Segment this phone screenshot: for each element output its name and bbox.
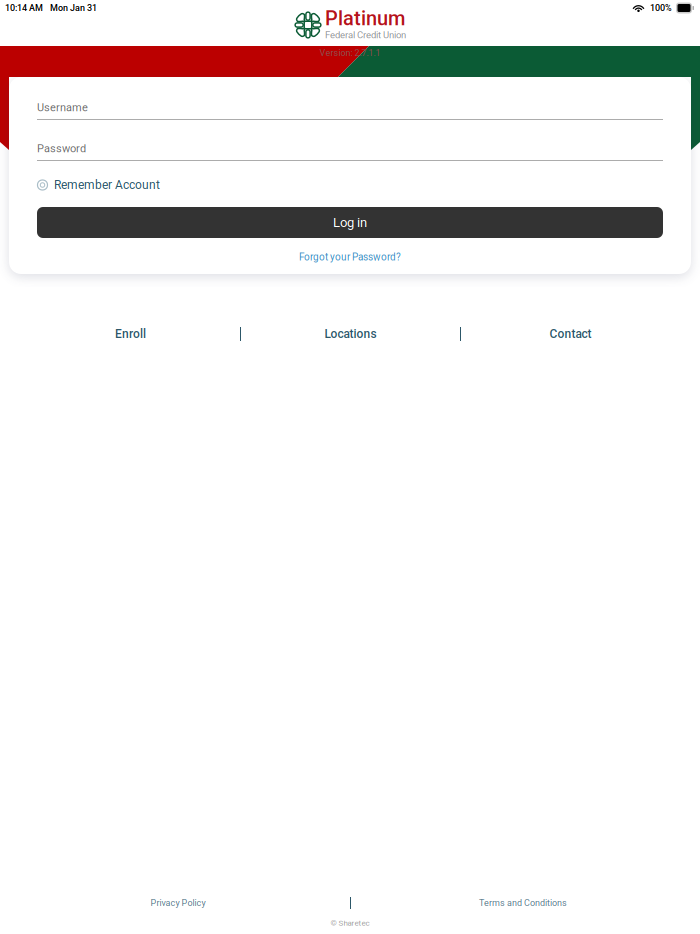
button[interactable]: Locations xyxy=(241,322,460,346)
staticText: Terms and Conditions xyxy=(479,898,567,908)
staticText: Username xyxy=(37,101,88,114)
button[interactable]: Log in xyxy=(37,207,663,238)
staticText: Enroll xyxy=(115,327,146,341)
staticText: Log in xyxy=(333,215,367,230)
staticText: Password xyxy=(37,142,86,155)
button[interactable]: Privacy Policy xyxy=(6,895,350,911)
staticText: 10:14 AM xyxy=(5,3,43,13)
staticText: Contact xyxy=(549,327,591,341)
staticText: Forgot your Password? xyxy=(299,251,401,263)
staticText: Federal Credit Union xyxy=(325,29,406,40)
staticText: Version: 2.7.1.1 xyxy=(319,48,380,58)
button[interactable]: Enroll xyxy=(21,322,240,346)
staticText: © Sharetec xyxy=(330,918,369,928)
button[interactable]: Forgot your Password? xyxy=(37,250,663,264)
button[interactable]: Remember Account xyxy=(37,177,663,193)
button[interactable]: Terms and Conditions xyxy=(351,895,695,911)
staticText: Platinum xyxy=(325,7,405,30)
staticText: Privacy Policy xyxy=(150,898,205,908)
staticText: Remember Account xyxy=(54,178,160,192)
button[interactable]: Contact xyxy=(461,322,680,346)
staticText: Mon Jan 31 xyxy=(50,3,97,13)
staticText: 100% xyxy=(650,3,672,13)
staticText: Locations xyxy=(324,327,376,341)
